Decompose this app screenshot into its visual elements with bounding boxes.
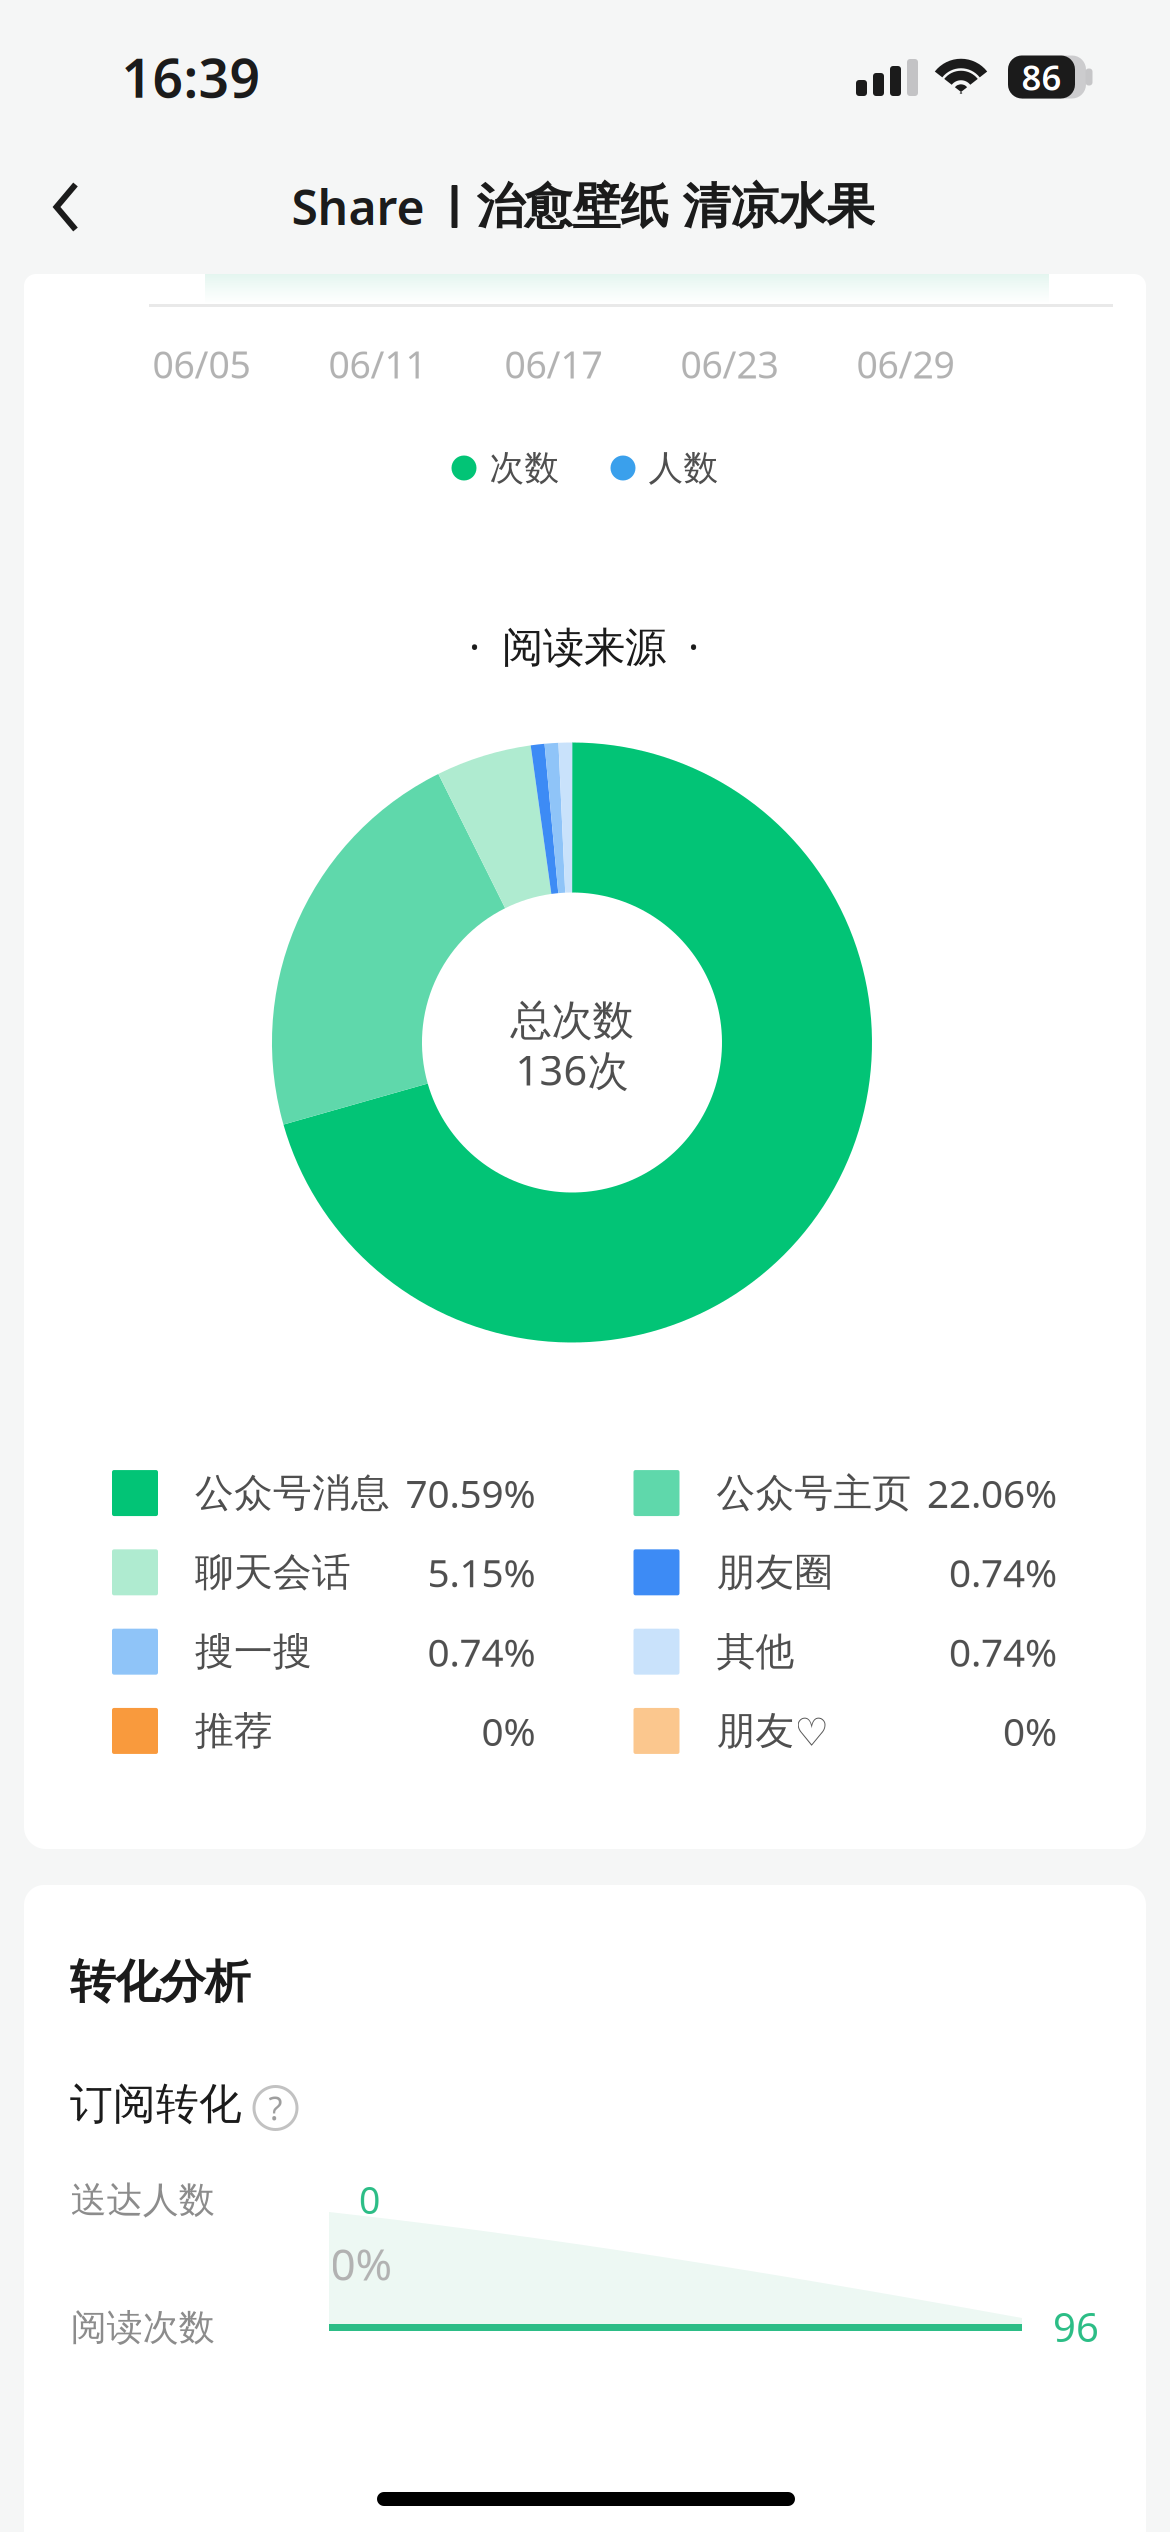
staticText: 22.06% bbox=[927, 1467, 1057, 1519]
staticText: 阅读次数 bbox=[71, 2305, 215, 2350]
staticText: 朋友♡ bbox=[716, 1707, 829, 1755]
staticText: 06/05 bbox=[152, 339, 250, 389]
staticText: 06/23 bbox=[680, 339, 778, 389]
staticText: 送达人数 bbox=[71, 2178, 215, 2222]
staticText: 搜一搜 bbox=[195, 1628, 312, 1675]
button[interactable]: Back bbox=[11, 152, 121, 262]
staticText: 推荐 bbox=[195, 1707, 273, 1755]
staticText: 订阅转化 bbox=[70, 2078, 242, 2130]
staticText: 0.74% bbox=[427, 1626, 535, 1677]
staticText: 136次 bbox=[515, 1042, 628, 1097]
staticText: 5.15% bbox=[427, 1547, 535, 1598]
staticText: 其他 bbox=[716, 1628, 794, 1675]
staticText: 朋友圈 bbox=[716, 1549, 833, 1596]
staticText: 0 bbox=[359, 2175, 380, 2224]
staticText: 0.74% bbox=[949, 1626, 1057, 1677]
staticText: 0.74% bbox=[949, 1547, 1057, 1598]
staticText: 转化分析 bbox=[70, 1954, 250, 2010]
staticText: 次数 bbox=[489, 447, 559, 489]
staticText: 16:39 bbox=[121, 42, 260, 112]
staticText: 0% bbox=[330, 2234, 392, 2293]
staticText: 0% bbox=[481, 1705, 535, 1757]
staticText: 聊天会话 bbox=[195, 1549, 351, 1596]
staticText: 06/29 bbox=[856, 339, 954, 389]
staticText: 0% bbox=[1003, 1705, 1057, 1757]
staticText: 70.59% bbox=[405, 1467, 535, 1519]
staticText: 96 bbox=[1053, 2300, 1099, 2353]
staticText: Share bbox=[291, 175, 424, 238]
staticText: 人数 bbox=[648, 447, 718, 489]
button[interactable]: 说明 bbox=[243, 2076, 307, 2140]
staticText: 06/11 bbox=[328, 339, 426, 389]
staticText: 治愈壁纸 清凉水果 bbox=[476, 177, 874, 236]
staticText: 86 bbox=[1021, 54, 1061, 100]
staticText: 公众号主页 bbox=[716, 1469, 911, 1517]
staticText: 06/17 bbox=[504, 339, 602, 389]
staticText: · 阅读来源 · bbox=[469, 619, 699, 673]
staticText: 公众号消息 bbox=[195, 1469, 390, 1517]
staticText: 总次数 bbox=[510, 995, 633, 1046]
staticText: ? bbox=[268, 2087, 282, 2129]
